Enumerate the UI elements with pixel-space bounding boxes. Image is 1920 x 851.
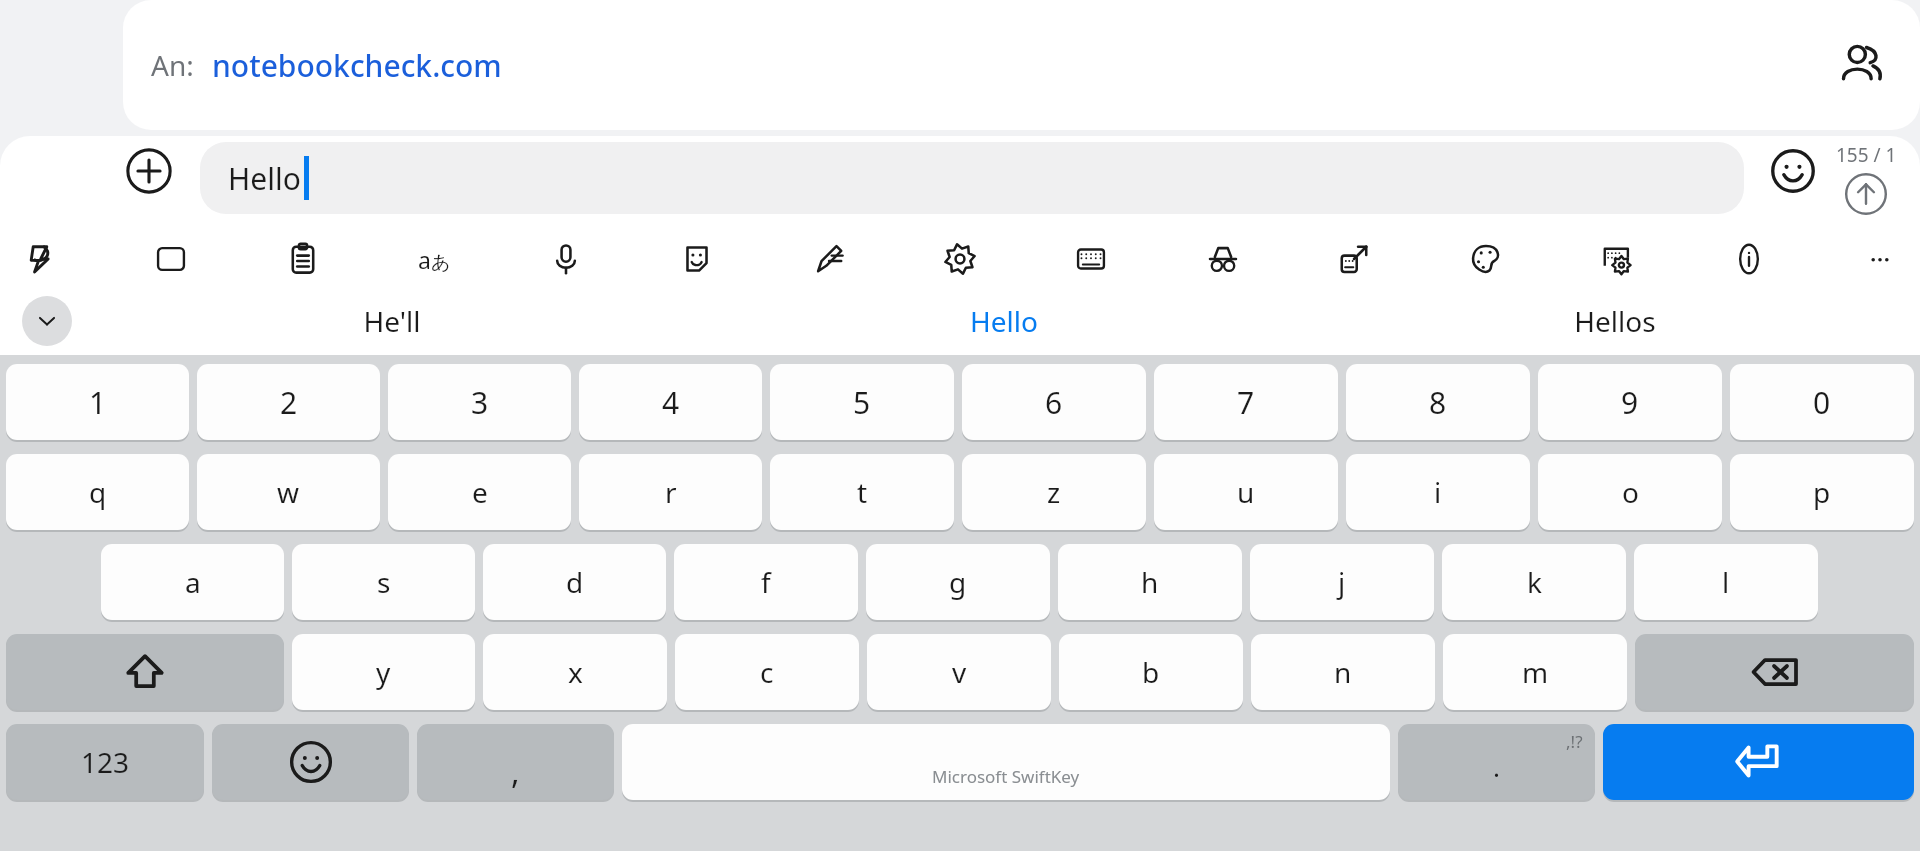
button[interactable]: Keyboard layout (1065, 233, 1117, 285)
button[interactable]: Incognito (1197, 233, 1249, 285)
button[interactable]: n (1251, 634, 1435, 710)
staticText: l (1722, 563, 1730, 601)
button[interactable]: Stickers (671, 233, 723, 285)
button[interactable]: Period (1398, 724, 1595, 800)
button[interactable]: r (579, 454, 762, 530)
button[interactable]: y (292, 634, 475, 710)
button[interactable]: Shift (6, 634, 284, 710)
button[interactable]: SwiftKey (14, 233, 66, 285)
staticText: g (949, 563, 967, 601)
button[interactable]: Hello (200, 142, 1744, 214)
button[interactable]: Emoji (1764, 142, 1822, 200)
button[interactable]: c (675, 634, 859, 710)
button[interactable]: g (866, 544, 1050, 620)
button[interactable]: He'll (86, 287, 698, 355)
button[interactable]: b (1059, 634, 1243, 710)
staticText: t (857, 473, 868, 511)
button[interactable]: Settings (934, 233, 986, 285)
staticText: 123 (81, 743, 130, 781)
button[interactable]: More (1854, 233, 1906, 285)
button[interactable]: 123 (6, 724, 204, 800)
button[interactable]: 4 (579, 364, 762, 440)
button[interactable]: Enter (1603, 724, 1914, 800)
button[interactable]: Translator (408, 233, 460, 285)
staticText: あ (431, 251, 451, 275)
button[interactable]: x (483, 634, 667, 710)
button[interactable]: l (1634, 544, 1818, 620)
staticText: p (1813, 473, 1831, 511)
button[interactable]: Emoji (212, 724, 409, 800)
button[interactable]: Space (622, 724, 1390, 800)
button[interactable]: Info (1723, 233, 1775, 285)
staticText: Microsoft SwiftKey (932, 765, 1080, 788)
staticText: 6 (1045, 382, 1063, 423)
button[interactable]: a (101, 544, 284, 620)
button[interactable]: Send (1840, 168, 1892, 220)
staticText: ,!? (1566, 730, 1583, 753)
button[interactable]: d (483, 544, 666, 620)
staticText: e (472, 473, 488, 511)
staticText: Hellos (1574, 302, 1656, 340)
staticText: d (566, 563, 584, 601)
button[interactable]: e (388, 454, 571, 530)
staticText: He'll (363, 302, 421, 340)
button[interactable]: , (417, 724, 614, 800)
button[interactable]: notebookcheck.com (212, 45, 502, 86)
button[interactable]: v (867, 634, 1051, 710)
button[interactable]: 3 (388, 364, 571, 440)
button[interactable]: Choose contact (1832, 36, 1890, 94)
staticText: a (418, 244, 431, 275)
button[interactable]: Hellos (1309, 287, 1920, 355)
button[interactable]: Expand suggestions (22, 296, 72, 346)
button[interactable]: f (674, 544, 858, 620)
button[interactable]: GIF (145, 233, 197, 285)
button[interactable]: 5 (770, 364, 954, 440)
staticText: An: (151, 46, 194, 84)
button[interactable]: Clipboard (277, 233, 329, 285)
staticText: 0 (1813, 382, 1831, 423)
button[interactable]: u (1154, 454, 1338, 530)
staticText: 3 (471, 382, 489, 423)
button[interactable]: Layout settings (1591, 233, 1643, 285)
staticText: s (377, 563, 391, 601)
staticText: Hello (970, 302, 1038, 340)
button[interactable]: h (1058, 544, 1242, 620)
staticText: 8 (1429, 382, 1447, 423)
staticText: m (1522, 653, 1549, 691)
staticText: a (185, 563, 201, 601)
button[interactable]: j (1250, 544, 1434, 620)
button[interactable]: p (1730, 454, 1914, 530)
staticText: h (1141, 563, 1159, 601)
button[interactable]: s (292, 544, 475, 620)
button[interactable]: m (1443, 634, 1627, 710)
button[interactable]: Backspace (1635, 634, 1914, 710)
button[interactable]: t (770, 454, 954, 530)
button[interactable]: 9 (1538, 364, 1722, 440)
staticText: 9 (1621, 382, 1639, 423)
button[interactable]: 0 (1730, 364, 1914, 440)
button[interactable]: 2 (197, 364, 380, 440)
button[interactable]: Voice input (540, 233, 592, 285)
staticText: i (1434, 473, 1442, 511)
button[interactable]: q (6, 454, 189, 530)
staticText: f (761, 563, 771, 601)
button[interactable]: o (1538, 454, 1722, 530)
button[interactable]: w (197, 454, 380, 530)
staticText: 1 (89, 382, 107, 423)
staticText: w (277, 473, 300, 511)
staticText: x (568, 653, 583, 691)
button[interactable]: i (1346, 454, 1530, 530)
button[interactable]: 6 (962, 364, 1146, 440)
staticText: notebookcheck.com (212, 45, 502, 86)
button[interactable]: Resize keyboard (1328, 233, 1380, 285)
button[interactable]: Handwriting (803, 233, 855, 285)
button[interactable]: Themes (1460, 233, 1512, 285)
button[interactable]: Hello (698, 287, 1309, 355)
button[interactable]: 8 (1346, 364, 1530, 440)
button[interactable]: k (1442, 544, 1626, 620)
staticText: o (1622, 473, 1639, 511)
button[interactable]: Add attachment (120, 142, 178, 200)
button[interactable]: 7 (1154, 364, 1338, 440)
button[interactable]: z (962, 454, 1146, 530)
button[interactable]: 1 (6, 364, 189, 440)
